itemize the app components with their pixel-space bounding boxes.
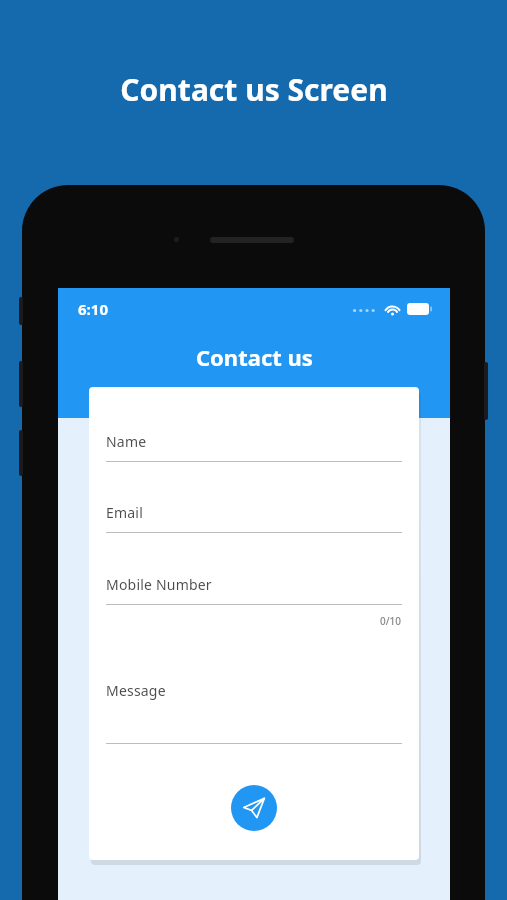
staticText: Email	[106, 503, 143, 522]
staticText: Contact us Screen	[120, 69, 388, 110]
staticText: Contact us	[196, 342, 313, 372]
button[interactable]: Send message	[231, 785, 277, 831]
staticText: Message	[106, 681, 166, 700]
staticText: 0/10	[380, 614, 402, 628]
button[interactable]: Name	[89, 429, 419, 453]
button[interactable]: Mobile Number	[89, 572, 419, 596]
staticText: Name	[106, 432, 147, 451]
staticText: 6:10	[78, 299, 108, 319]
button[interactable]: Message	[89, 678, 419, 702]
staticText: Mobile Number	[106, 575, 212, 594]
button[interactable]: Email	[89, 500, 419, 524]
